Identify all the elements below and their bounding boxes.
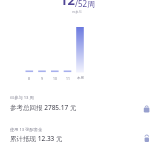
staticText: 已参与 13 周: [10, 95, 34, 101]
staticText: 9: [41, 76, 43, 81]
staticText: 本周: [77, 76, 84, 80]
staticText: 参考总回报 2785.17 元: [10, 103, 77, 112]
staticText: 11: [66, 76, 70, 81]
staticText: 已参与: [72, 10, 82, 14]
button[interactable]: 查看抵现详情: [143, 134, 151, 142]
staticText: 12: [60, 0, 75, 9]
staticText: 10: [53, 76, 57, 81]
button[interactable]: 使用 13 张配套金: [0, 124, 160, 150]
button[interactable]: 查看回报详情: [143, 105, 151, 113]
staticText: /52周: [75, 0, 96, 9]
button[interactable]: 已参与 13 周: [0, 92, 160, 118]
staticText: 8: [28, 76, 30, 81]
staticText: 使用 13 张配套金: [10, 127, 43, 133]
staticText: 累计抵现 12.33 元: [10, 134, 63, 143]
